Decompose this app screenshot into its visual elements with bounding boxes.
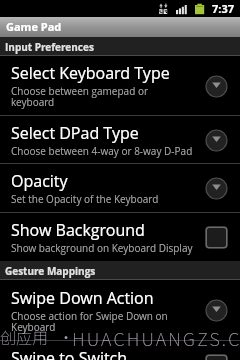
button[interactable]: Select Keyboard Type (0, 56, 240, 115)
staticText: Choose between gamepad or keyboard (11, 84, 148, 109)
staticText: Show background on Keyboard Display (11, 241, 193, 255)
staticText: Show Background (11, 219, 145, 241)
staticText: Game Pad (6, 19, 62, 34)
staticText: Swipe to Switch (11, 347, 128, 360)
button[interactable]: Open options (203, 73, 229, 99)
staticText: 创应用 (0, 325, 49, 348)
button[interactable]: Swipe to Switch (0, 341, 240, 360)
staticText: Set the Opacity of the Keyboard (11, 192, 159, 206)
staticText: 7:37 (212, 1, 234, 16)
button[interactable]: Opacity (0, 164, 240, 212)
button[interactable]: Open options (203, 175, 229, 201)
staticText: • (58, 325, 75, 348)
button[interactable]: Toggle checkbox (203, 352, 229, 360)
button[interactable]: Open options (203, 297, 229, 323)
staticText: Opacity (11, 170, 68, 192)
staticText: HUACHUANGZS.COM (72, 325, 240, 351)
button[interactable]: Show Background (0, 213, 240, 261)
button[interactable]: Swipe Down Action (0, 280, 240, 340)
button[interactable]: Select DPad Type (0, 116, 240, 163)
staticText: Swipe Down Action (11, 287, 154, 309)
staticText: Select Keyboard Type (11, 62, 170, 84)
button[interactable]: Game Pad (0, 17, 240, 37)
button[interactable]: Open options (203, 127, 229, 153)
button[interactable]: Toggle checkbox (203, 224, 229, 250)
staticText: Gesture Mappings (5, 264, 96, 278)
staticText: Choose action for Swipe Down on Keyboard (11, 309, 168, 334)
staticText: Select DPad Type (11, 122, 139, 144)
staticText: Input Preferences (5, 40, 94, 54)
staticText: Choose between 4-way or 8-way D-Pad (11, 144, 193, 158)
